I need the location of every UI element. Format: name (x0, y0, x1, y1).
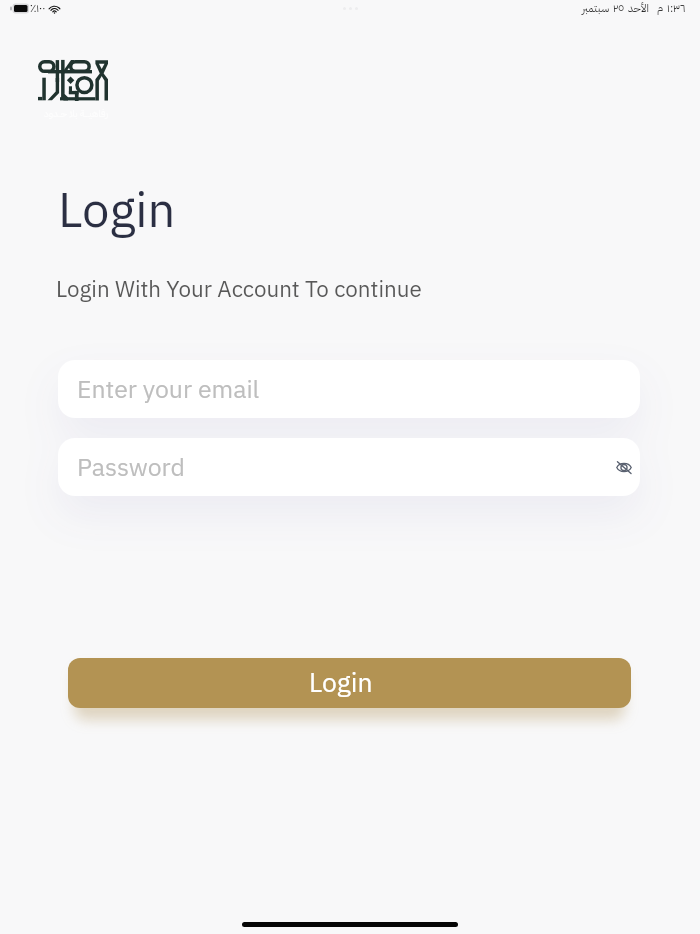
staticText: م (657, 0, 664, 17)
button[interactable]: Login (68, 658, 631, 708)
staticText: ١:٣٦ (667, 0, 686, 17)
staticText: سبتمبر (582, 0, 610, 17)
staticText: Login With Your Account To continue (56, 273, 422, 307)
staticText: Password (77, 449, 185, 486)
button[interactable]: Show password (609, 452, 639, 482)
staticText: Login (58, 174, 176, 248)
staticText: Login (309, 663, 373, 703)
staticText: Enter your email (77, 371, 260, 408)
staticText: ٢٥ (613, 0, 625, 17)
staticText: ٪١٠٠ (30, 0, 46, 17)
button[interactable]: Enter your email (58, 360, 640, 418)
staticText: الأحد (628, 0, 649, 17)
button[interactable]: Password (58, 438, 640, 496)
